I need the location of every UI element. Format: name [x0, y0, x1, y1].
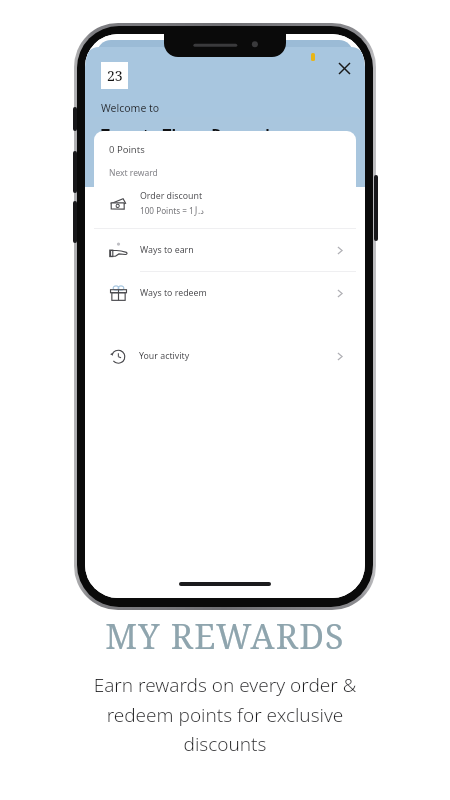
staticText: Ways to redeem	[140, 287, 337, 299]
staticText: Twenty Three Rewards	[101, 124, 278, 145]
button[interactable]: Close	[329, 53, 359, 83]
staticText: 23	[107, 66, 123, 85]
button[interactable]: Your activity	[94, 334, 356, 378]
staticText: Earn rewards on every order & redeem poi…	[26, 672, 424, 756]
button[interactable]: Ways to redeem	[94, 272, 356, 314]
button[interactable]: Ways to earn	[94, 229, 356, 271]
staticText: Order discount	[140, 190, 203, 202]
staticText: Your activity	[139, 350, 337, 362]
button[interactable]: Order discount	[94, 185, 356, 221]
staticText: Next reward	[109, 167, 158, 179]
staticText: Welcome to	[101, 101, 160, 115]
staticText: Ways to earn	[140, 244, 337, 256]
staticText: 0 Points	[109, 143, 145, 156]
staticText: 100 Points = 1⌡.د	[140, 205, 204, 216]
staticText: MY REWARDS	[0, 613, 450, 659]
